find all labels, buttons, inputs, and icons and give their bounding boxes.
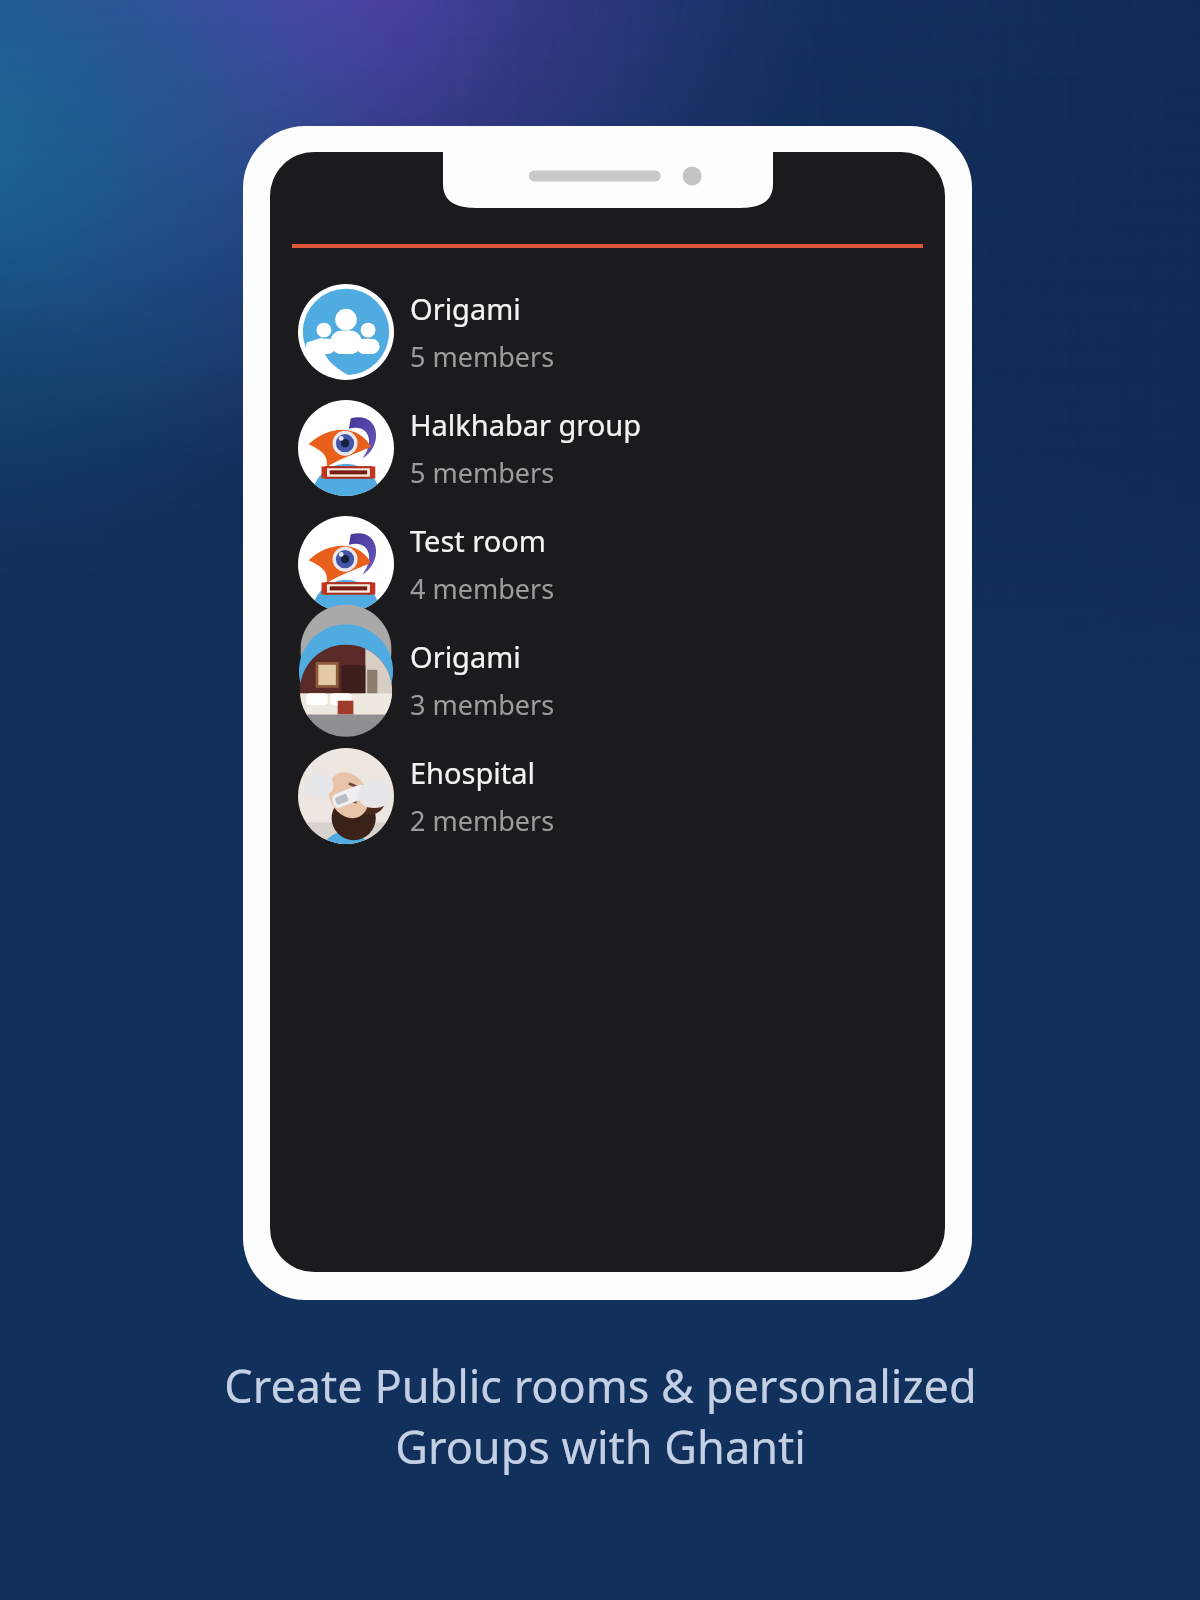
button[interactable]: Ehospital: [270, 738, 945, 854]
staticText: Groups with Ghanti: [395, 1416, 806, 1477]
staticText: 4 members: [410, 570, 555, 607]
staticText: Create Public rooms & personalized: [224, 1355, 977, 1416]
button[interactable]: Origami: [270, 274, 945, 390]
staticText: Halkhabar group: [410, 405, 642, 444]
staticText: 3 members: [410, 686, 555, 723]
staticText: Test room: [410, 521, 546, 560]
button[interactable]: Test room: [270, 506, 945, 622]
staticText: 5 members: [410, 454, 555, 491]
button[interactable]: Origami: [270, 622, 945, 738]
staticText: Origami: [410, 637, 521, 676]
button[interactable]: Halkhabar group: [270, 390, 945, 506]
staticText: 2 members: [410, 802, 555, 839]
staticText: 5 members: [410, 338, 555, 375]
staticText: Origami: [410, 289, 521, 328]
staticText: Ehospital: [410, 753, 536, 792]
